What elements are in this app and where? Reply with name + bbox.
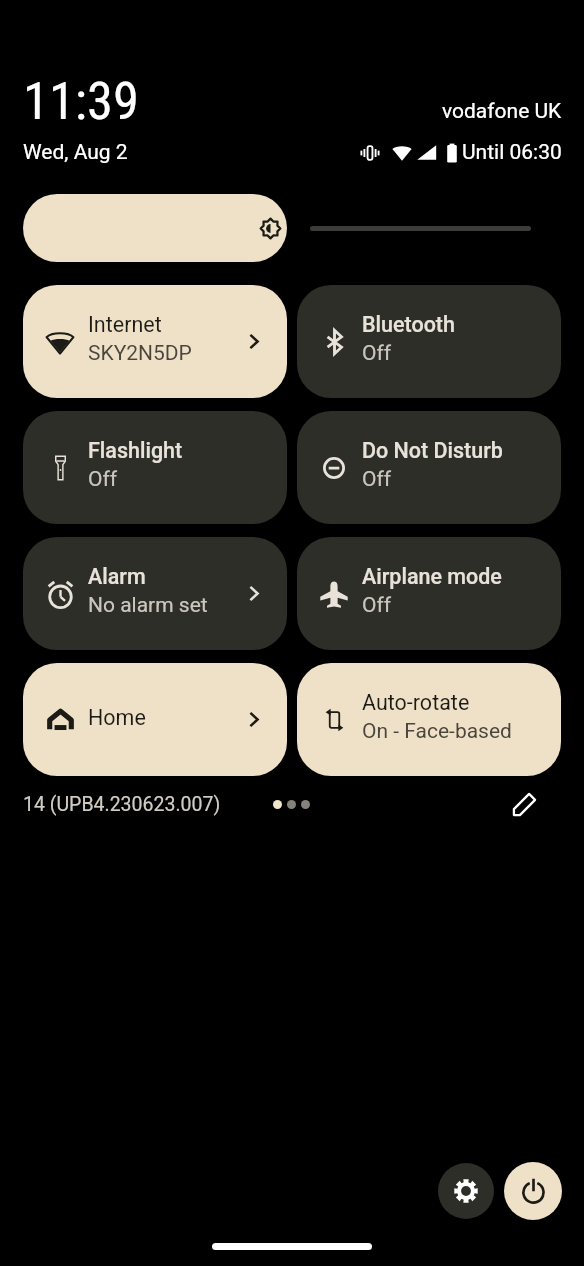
staticText: Off bbox=[88, 467, 118, 492]
staticText: Internet bbox=[88, 312, 162, 337]
button[interactable]: Home bbox=[23, 663, 287, 776]
staticText: Airplane mode bbox=[362, 564, 502, 589]
staticText: Until 06:30 bbox=[462, 140, 562, 165]
staticText: 11:39 bbox=[23, 70, 139, 132]
button[interactable]: Internet bbox=[23, 285, 287, 398]
staticText: Do Not Disturb bbox=[362, 438, 503, 463]
staticText: Wed, Aug 2 bbox=[23, 140, 128, 165]
staticText: Flashlight bbox=[88, 438, 183, 463]
button[interactable]: Power bbox=[504, 1162, 562, 1220]
staticText: Alarm bbox=[88, 564, 146, 589]
staticText: No alarm set bbox=[88, 593, 208, 618]
staticText: Off bbox=[362, 593, 392, 618]
button[interactable]: Edit bbox=[502, 782, 546, 826]
button[interactable]: Auto-rotate bbox=[297, 663, 561, 776]
staticText: On - Face-based bbox=[362, 719, 512, 744]
staticText: Off bbox=[362, 467, 392, 492]
staticText: Home bbox=[88, 705, 146, 730]
staticText: 14 (UPB4.230623.007) bbox=[23, 793, 221, 816]
button[interactable]: Alarm bbox=[23, 537, 287, 650]
staticText: Off bbox=[362, 341, 392, 366]
button[interactable]: Airplane mode bbox=[297, 537, 561, 650]
staticText: vodafone UK bbox=[442, 99, 562, 124]
button[interactable]: Bluetooth bbox=[297, 285, 561, 398]
staticText: SKY2N5DP bbox=[88, 341, 192, 366]
staticText: Auto-rotate bbox=[362, 690, 470, 715]
button[interactable]: Brightness bbox=[23, 194, 287, 262]
button[interactable]: Settings bbox=[438, 1163, 494, 1219]
staticText: Bluetooth bbox=[362, 312, 455, 337]
button[interactable]: Flashlight bbox=[23, 411, 287, 524]
button[interactable]: Do Not Disturb bbox=[297, 411, 561, 524]
